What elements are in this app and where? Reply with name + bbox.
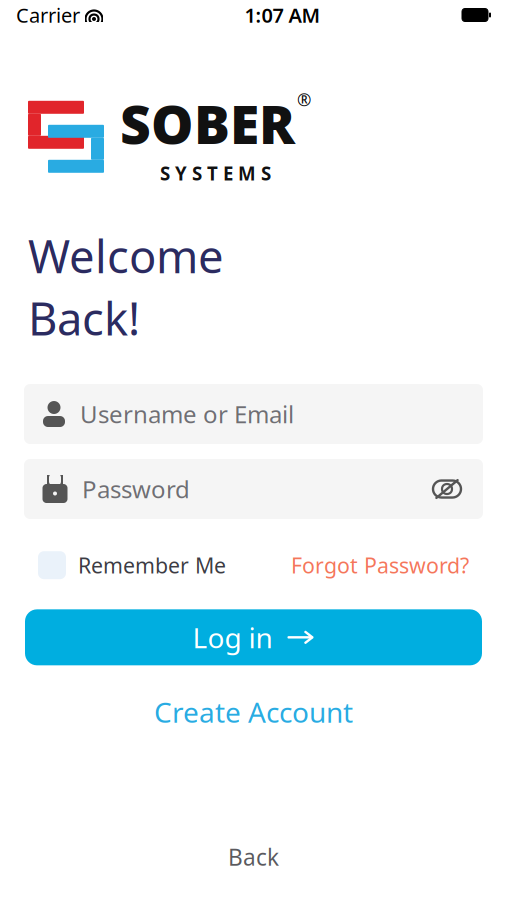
staticText: Password: [82, 473, 190, 505]
staticText: Create Account: [154, 693, 353, 730]
staticText: Remember Me: [78, 551, 226, 579]
staticText: ®: [297, 88, 311, 111]
staticText: Carrier: [16, 2, 80, 28]
staticText: Log in: [192, 619, 272, 656]
staticText: Back: [228, 842, 279, 872]
staticText: Back!: [28, 288, 140, 348]
staticText: S Y S T E M S: [160, 161, 271, 186]
button[interactable]: Log in: [25, 609, 482, 665]
button[interactable]: Show password: [429, 469, 465, 509]
button[interactable]: Back: [208, 834, 299, 880]
button[interactable]: Remember Me: [38, 551, 226, 579]
staticText: Welcome: [28, 226, 224, 286]
staticText: 1:07 AM: [244, 2, 320, 28]
staticText: Username or Email: [80, 398, 294, 430]
button[interactable]: Forgot Password?: [291, 551, 469, 579]
staticText: SOBER: [120, 88, 295, 159]
button[interactable]: Create Account: [138, 685, 369, 738]
staticText: Forgot Password?: [291, 551, 469, 579]
